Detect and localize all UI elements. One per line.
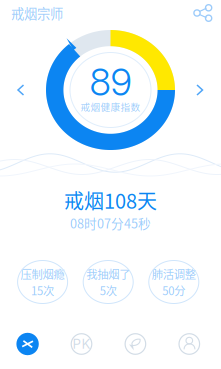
staticText: 15次 [31,282,54,298]
button[interactable]: Share [193,3,213,23]
staticText: 戒烟宗师 [11,3,63,23]
button[interactable]: Chat [123,332,147,356]
button[interactable]: Previous [9,76,32,104]
staticText: 我抽烟了 [86,266,130,282]
staticText: 08时07分45秒 [70,214,151,232]
button[interactable]: 肺活调整 [149,260,199,303]
staticText: PK [72,336,90,352]
staticText: 89 [89,59,131,105]
button[interactable]: Next [188,76,211,104]
staticText: 5次 [100,282,117,298]
staticText: 戒烟健康指数 [80,99,140,113]
staticText: 戒烟108天 [64,185,157,214]
staticText: 压制烟瘾 [21,266,65,282]
button[interactable]: Profile [177,332,201,356]
button[interactable]: 压制烟瘾 [18,260,68,303]
staticText: 肺活调整 [152,266,196,282]
button[interactable]: PK [69,332,93,356]
staticText: 50分 [162,282,185,298]
button[interactable]: Quit smoking [16,332,40,356]
button[interactable]: 我抽烟了 [83,260,133,303]
